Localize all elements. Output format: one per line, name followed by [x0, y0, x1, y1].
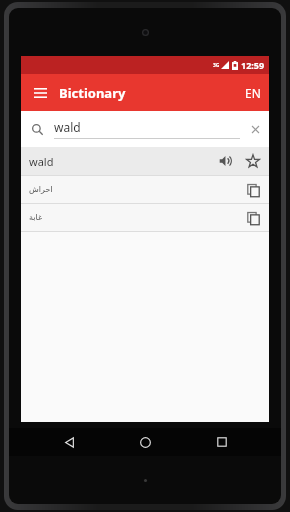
- button[interactable]: wald: [21, 147, 269, 175]
- staticText: wald: [29, 154, 54, 169]
- button[interactable]: EN: [237, 79, 269, 107]
- staticText: EN: [245, 85, 261, 101]
- staticText: احراش: [29, 185, 53, 194]
- button[interactable]: غابة: [21, 204, 269, 231]
- staticText: Bictionary: [59, 84, 126, 102]
- button[interactable]: Add to favourites: [240, 148, 266, 174]
- button[interactable]: Recent apps: [205, 428, 239, 456]
- staticText: غابة: [29, 213, 43, 222]
- button[interactable]: wald: [26, 118, 264, 140]
- button[interactable]: Copy translation: [240, 177, 266, 203]
- button[interactable]: Play pronunciation: [213, 148, 239, 174]
- button[interactable]: Copy translation: [240, 205, 266, 231]
- staticText: wald: [54, 119, 81, 135]
- button[interactable]: Home: [128, 428, 162, 456]
- staticText: 12:59: [241, 59, 265, 71]
- button[interactable]: Back: [52, 428, 86, 456]
- button[interactable]: Open navigation menu: [25, 78, 55, 108]
- button[interactable]: Clear search: [246, 120, 264, 138]
- button[interactable]: احراش: [21, 176, 269, 203]
- staticText: 3G: [213, 62, 220, 69]
